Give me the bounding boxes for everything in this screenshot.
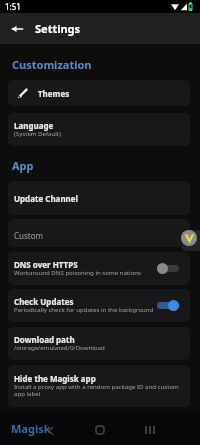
staticText: /storage/emulated/0/Download xyxy=(14,343,105,351)
staticText: Download path xyxy=(14,334,75,345)
button[interactable]: Off xyxy=(157,263,179,274)
staticText: Magisk xyxy=(11,421,51,436)
button[interactable]: Back xyxy=(2,14,32,44)
button[interactable]: Custom xyxy=(8,219,190,247)
button[interactable]: Hide the Magisk app xyxy=(8,365,190,407)
button[interactable]: Recent apps xyxy=(142,423,158,437)
staticText: Customization xyxy=(12,57,92,72)
staticText: Custom xyxy=(14,230,44,241)
button[interactable]: Language xyxy=(8,113,190,146)
staticText: DNS over HTTPS xyxy=(14,259,78,270)
button[interactable]: On xyxy=(157,300,179,311)
button[interactable]: Themes xyxy=(8,80,190,106)
button[interactable]: Back xyxy=(44,424,57,437)
staticText: Install a proxy app with a random packag… xyxy=(14,382,182,398)
staticText: Hide the Magisk app xyxy=(14,373,96,384)
staticText: Settings xyxy=(35,21,81,36)
button[interactable]: Check Updates xyxy=(8,289,190,322)
button[interactable]: Download path xyxy=(8,327,190,360)
button[interactable]: Home xyxy=(93,423,107,437)
button[interactable]: Update Channel xyxy=(8,181,190,215)
staticText: Themes xyxy=(38,88,70,99)
staticText: 1:51 xyxy=(5,1,21,12)
staticText: Language xyxy=(14,120,54,131)
staticText: Check Updates xyxy=(14,296,74,307)
button[interactable]: DNS over HTTPS xyxy=(8,252,190,285)
staticText: (System Default) xyxy=(14,129,61,137)
staticText: Workaround DNS poisoning in some nations xyxy=(14,268,141,276)
staticText: Periodically check for updates in the ba… xyxy=(14,305,154,313)
staticText: App xyxy=(12,158,34,173)
staticText: Update Channel xyxy=(14,193,78,204)
